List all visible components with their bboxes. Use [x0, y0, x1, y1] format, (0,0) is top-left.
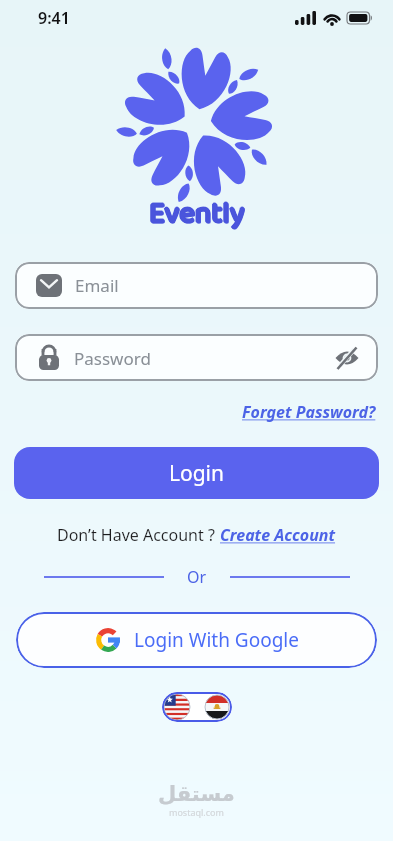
staticText: Password: [74, 347, 151, 370]
staticText: Evently: [150, 191, 246, 239]
staticText: Don’t Have Account ?: [57, 524, 220, 546]
button[interactable]: Password: [15, 334, 378, 381]
staticText: Evently: [150, 190, 246, 238]
button[interactable]: Login With Google: [16, 612, 377, 668]
button[interactable]: Forget Password?: [242, 401, 376, 423]
staticText: مستقل: [158, 782, 235, 806]
staticText: Or: [187, 566, 207, 588]
staticText: mostaql.com: [169, 806, 224, 818]
staticText: Evently: [149, 190, 245, 238]
staticText: Evently: [149, 191, 245, 239]
button[interactable]: Email: [15, 262, 378, 309]
staticText: Evently: [149, 189, 245, 237]
staticText: 9:41: [38, 7, 70, 29]
staticText: Evently: [149, 190, 245, 238]
staticText: Login With Google: [134, 627, 299, 653]
staticText: Evently: [148, 190, 244, 238]
staticText: Email: [75, 274, 119, 297]
button[interactable]: [162, 692, 232, 722]
button[interactable]: Login: [14, 447, 379, 499]
button[interactable]: Create Account: [220, 524, 336, 546]
staticText: Login: [169, 459, 225, 488]
